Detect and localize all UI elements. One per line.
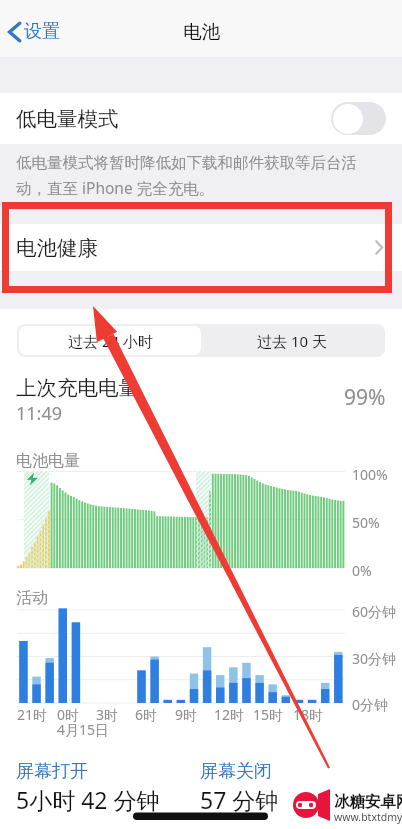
staticText: 11:49 — [16, 401, 63, 426]
staticText: 18时 — [293, 705, 324, 724]
staticText: 60分钟 — [352, 602, 397, 621]
staticText: 冰糖安卓网 — [334, 792, 402, 812]
button[interactable]: 设置 — [8, 17, 60, 46]
staticText: 3时 — [96, 705, 119, 724]
staticText: 12时 — [214, 705, 245, 724]
staticText: 99% — [344, 383, 386, 412]
button[interactable]: 电池健康 — [0, 224, 402, 271]
staticText: 电池健康 — [16, 235, 98, 261]
staticText: 过去 10 天 — [257, 331, 327, 351]
staticText: 上次充电电量 — [16, 375, 139, 401]
staticText: 低电量模式将暂时降低如下载和邮件获取等后台活 — [16, 153, 357, 173]
staticText: 过去 24 小时 — [68, 331, 153, 351]
staticText: 动，直至 iPhone 完全充电。 — [16, 177, 215, 198]
button[interactable]: 低电量模式开关 — [331, 102, 386, 135]
staticText: 活动 — [16, 588, 48, 608]
staticText: 57 分钟 — [200, 784, 279, 815]
staticText: 5小时 42 分钟 — [16, 784, 160, 815]
staticText: www.btxtdmy.com — [334, 810, 402, 824]
staticText: 50% — [352, 513, 380, 532]
staticText: 0分钟 — [352, 695, 389, 714]
staticText: 30分钟 — [352, 649, 397, 668]
staticText: 9时 — [175, 705, 198, 724]
staticText: 15时 — [253, 705, 284, 724]
staticText: 电池 — [183, 20, 220, 43]
staticText: 屏幕打开 — [16, 760, 88, 783]
staticText: 设置 — [24, 20, 60, 43]
staticText: 100% — [352, 465, 388, 484]
staticText: 21时 — [17, 705, 48, 724]
staticText: 4月15日 — [57, 720, 110, 739]
staticText: 低电量模式 — [16, 106, 119, 132]
button[interactable]: 过去 24 小时 — [19, 326, 201, 355]
staticText: 0时 — [57, 705, 80, 724]
button[interactable]: 过去 10 天 — [201, 326, 383, 355]
staticText: 屏幕关闭 — [200, 760, 272, 783]
staticText: 电池电量 — [16, 451, 80, 471]
staticText: 0% — [352, 561, 372, 580]
staticText: 6时 — [135, 705, 158, 724]
